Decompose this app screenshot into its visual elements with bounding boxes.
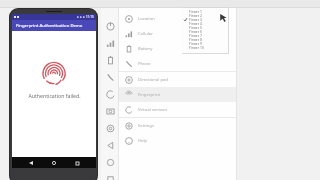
staticText: Directional pad: [138, 77, 168, 83]
button[interactable]: Zoom: [102, 120, 118, 136]
button[interactable]: Finger 5: [182, 25, 229, 29]
button[interactable]: Fingerprint: [119, 87, 237, 102]
staticText: Finger 9: [189, 41, 202, 45]
button[interactable]: Directional pad: [119, 72, 237, 87]
staticText: Cellular: [138, 31, 153, 37]
button[interactable]: Rotate right: [102, 86, 118, 102]
staticText: Finger 2: [189, 13, 202, 17]
button[interactable]: Finger 7: [182, 33, 229, 37]
staticText: Help: [138, 138, 148, 144]
staticText: Location: [138, 16, 155, 22]
button[interactable]: Home: [50, 159, 58, 167]
button[interactable]: Rotate left: [102, 69, 118, 85]
button[interactable]: Finger 1: [182, 9, 229, 13]
staticText: Finger 1: [189, 9, 202, 13]
button[interactable]: Home: [102, 154, 118, 170]
staticText: 11:15: [86, 15, 94, 19]
button[interactable]: Finger 8: [182, 37, 229, 41]
staticText: Finger 3: [189, 17, 202, 21]
button[interactable]: Finger 3: [182, 17, 229, 21]
button[interactable]: Settings: [119, 118, 237, 133]
button[interactable]: Cellular: [119, 26, 237, 41]
button[interactable]: Finger 9: [182, 41, 229, 45]
button[interactable]: Battery: [119, 41, 237, 56]
button[interactable]: Back: [102, 137, 118, 153]
button[interactable]: Fingerprint Authentication Demo: [12, 20, 96, 31]
button[interactable]: Finger 6: [182, 29, 229, 33]
button[interactable]: Screenshot: [102, 103, 118, 119]
staticText: Phone: [138, 61, 151, 67]
button[interactable]: Finger 10: [182, 45, 229, 49]
staticText: Finger 8: [189, 37, 202, 41]
staticText: Virtual sensors: [138, 107, 168, 113]
staticText: Battery: [138, 46, 153, 52]
button[interactable]: Finger 2: [182, 13, 229, 17]
staticText: Fingerprint: [138, 92, 160, 98]
button[interactable]: Power: [102, 18, 118, 34]
button[interactable]: Phone: [119, 56, 237, 71]
staticText: Finger 5: [189, 25, 202, 29]
staticText: Authentication failed.: [28, 92, 81, 99]
button[interactable]: Help: [119, 133, 237, 148]
button[interactable]: Back: [27, 159, 35, 167]
button[interactable]: Location: [119, 11, 237, 26]
button[interactable]: Recents: [73, 159, 81, 167]
button[interactable]: Overview: [102, 171, 118, 180]
button[interactable]: Volume down: [102, 52, 118, 68]
staticText: Fingerprint Authentication Demo: [16, 23, 83, 29]
button[interactable]: Finger 4: [182, 21, 229, 25]
button[interactable]: Virtual sensors: [119, 102, 237, 117]
button[interactable]: Volume up: [102, 35, 118, 51]
staticText: Finger 7: [189, 33, 202, 37]
staticText: Finger 4: [189, 21, 202, 25]
staticText: Finger 6: [189, 29, 202, 33]
staticText: Finger 10: [189, 45, 204, 49]
staticText: Settings: [138, 123, 154, 129]
